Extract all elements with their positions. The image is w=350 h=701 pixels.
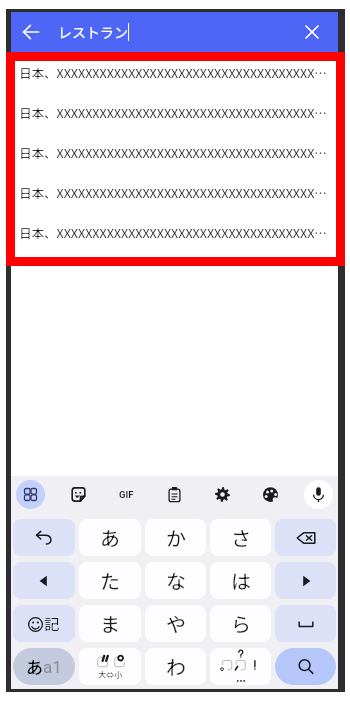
staticText: 日本、XXXXXXXXXXXXXXXXXXXXXXXXXXXXXXXXXXXXX… [19,143,331,161]
staticText: 日本、XXXXXXXXXXXXXXXXXXXXXXXXXXXXXXXXXXXXX… [19,183,331,201]
staticText: 記 [44,613,60,635]
staticText: た [100,566,120,595]
staticText: GIF [119,489,134,500]
button[interactable]: Switch input mode [13,648,75,685]
button[interactable]: 日本、XXXXXXXXXXXXXXXXXXXXXXXXXXXXXXXXXXXXX… [11,212,338,252]
button[interactable]: は [210,562,271,599]
button[interactable]: Dakuten [79,648,141,685]
button[interactable]: か [145,519,206,556]
button[interactable]: あ [79,519,141,556]
staticText: 日本、XXXXXXXXXXXXXXXXXXXXXXXXXXXXXXXXXXXXX… [19,223,331,241]
button[interactable]: 日本、XXXXXXXXXXXXXXXXXXXXXXXXXXXXXXXXXXXXX… [11,132,338,172]
button[interactable]: や [145,605,206,642]
button[interactable]: ま [79,605,141,642]
staticText: さ [231,523,251,552]
staticText: 日本、XXXXXXXXXXXXXXXXXXXXXXXXXXXXXXXXXXXXX… [19,103,331,121]
button[interactable]: ら [210,605,271,642]
button[interactable]: Punctuation [210,648,271,685]
button[interactable]: GIF [112,480,141,509]
staticText: ら [231,609,251,638]
staticText: わ [166,652,186,681]
button[interactable]: Themes [256,480,285,509]
staticText: あ [100,523,120,552]
button[interactable]: わ [145,648,206,685]
staticText: レストラン [58,22,128,42]
staticText: か [166,523,186,552]
button[interactable]: 日本、XXXXXXXXXXXXXXXXXXXXXXXXXXXXXXXXXXXXX… [11,92,338,132]
button[interactable]: Voice input [304,480,333,509]
button[interactable]: Space [275,605,336,642]
button[interactable]: な [145,562,206,599]
button[interactable]: Emoji and symbols [13,605,75,642]
staticText: は [231,566,251,595]
staticText: な [166,566,186,595]
button[interactable]: Undo [13,519,75,556]
staticText: a1 [43,657,62,677]
button[interactable]: Settings [208,480,237,509]
staticText: 日本、XXXXXXXXXXXXXXXXXXXXXXXXXXXXXXXXXXXXX… [19,63,331,81]
button[interactable]: Stickers [64,480,93,509]
staticText: 大⇔小 [98,669,122,681]
button[interactable]: 日本、XXXXXXXXXXXXXXXXXXXXXXXXXXXXXXXXXXXXX… [11,172,338,212]
button[interactable]: Clipboard [160,480,189,509]
button[interactable]: Cursor left [13,562,75,599]
staticText: や [166,609,186,638]
button[interactable]: Cursor right [275,562,336,599]
button[interactable]: Keyboard layouts [16,480,45,509]
staticText: あ [26,654,43,679]
button[interactable]: Clear text [292,12,332,52]
button[interactable]: た [79,562,141,599]
button[interactable]: Backspace [275,519,336,556]
button[interactable]: さ [210,519,271,556]
button[interactable]: Search [275,648,336,685]
staticText: ま [100,609,120,638]
button[interactable]: Back [11,12,51,52]
button[interactable]: 日本、XXXXXXXXXXXXXXXXXXXXXXXXXXXXXXXXXXXXX… [11,52,338,92]
